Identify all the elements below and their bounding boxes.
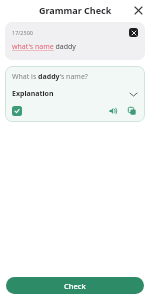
staticText: 17/2500 <box>12 29 33 36</box>
button[interactable]: Explanation <box>12 89 138 99</box>
button[interactable]: Listen <box>107 105 119 117</box>
staticText: what's name daddy <box>12 42 76 52</box>
button[interactable]: 17/2500 <box>5 22 145 60</box>
button[interactable]: Copy <box>126 105 138 117</box>
button[interactable]: Check <box>6 277 144 294</box>
staticText: Check <box>64 281 86 291</box>
staticText: Explanation <box>12 89 54 99</box>
staticText: What is daddy's name? <box>12 72 88 82</box>
button[interactable]: Apply suggestion <box>12 106 22 116</box>
staticText: Grammar Check <box>39 4 112 16</box>
button[interactable]: Clear text <box>129 28 138 37</box>
button[interactable]: Close <box>131 3 145 17</box>
